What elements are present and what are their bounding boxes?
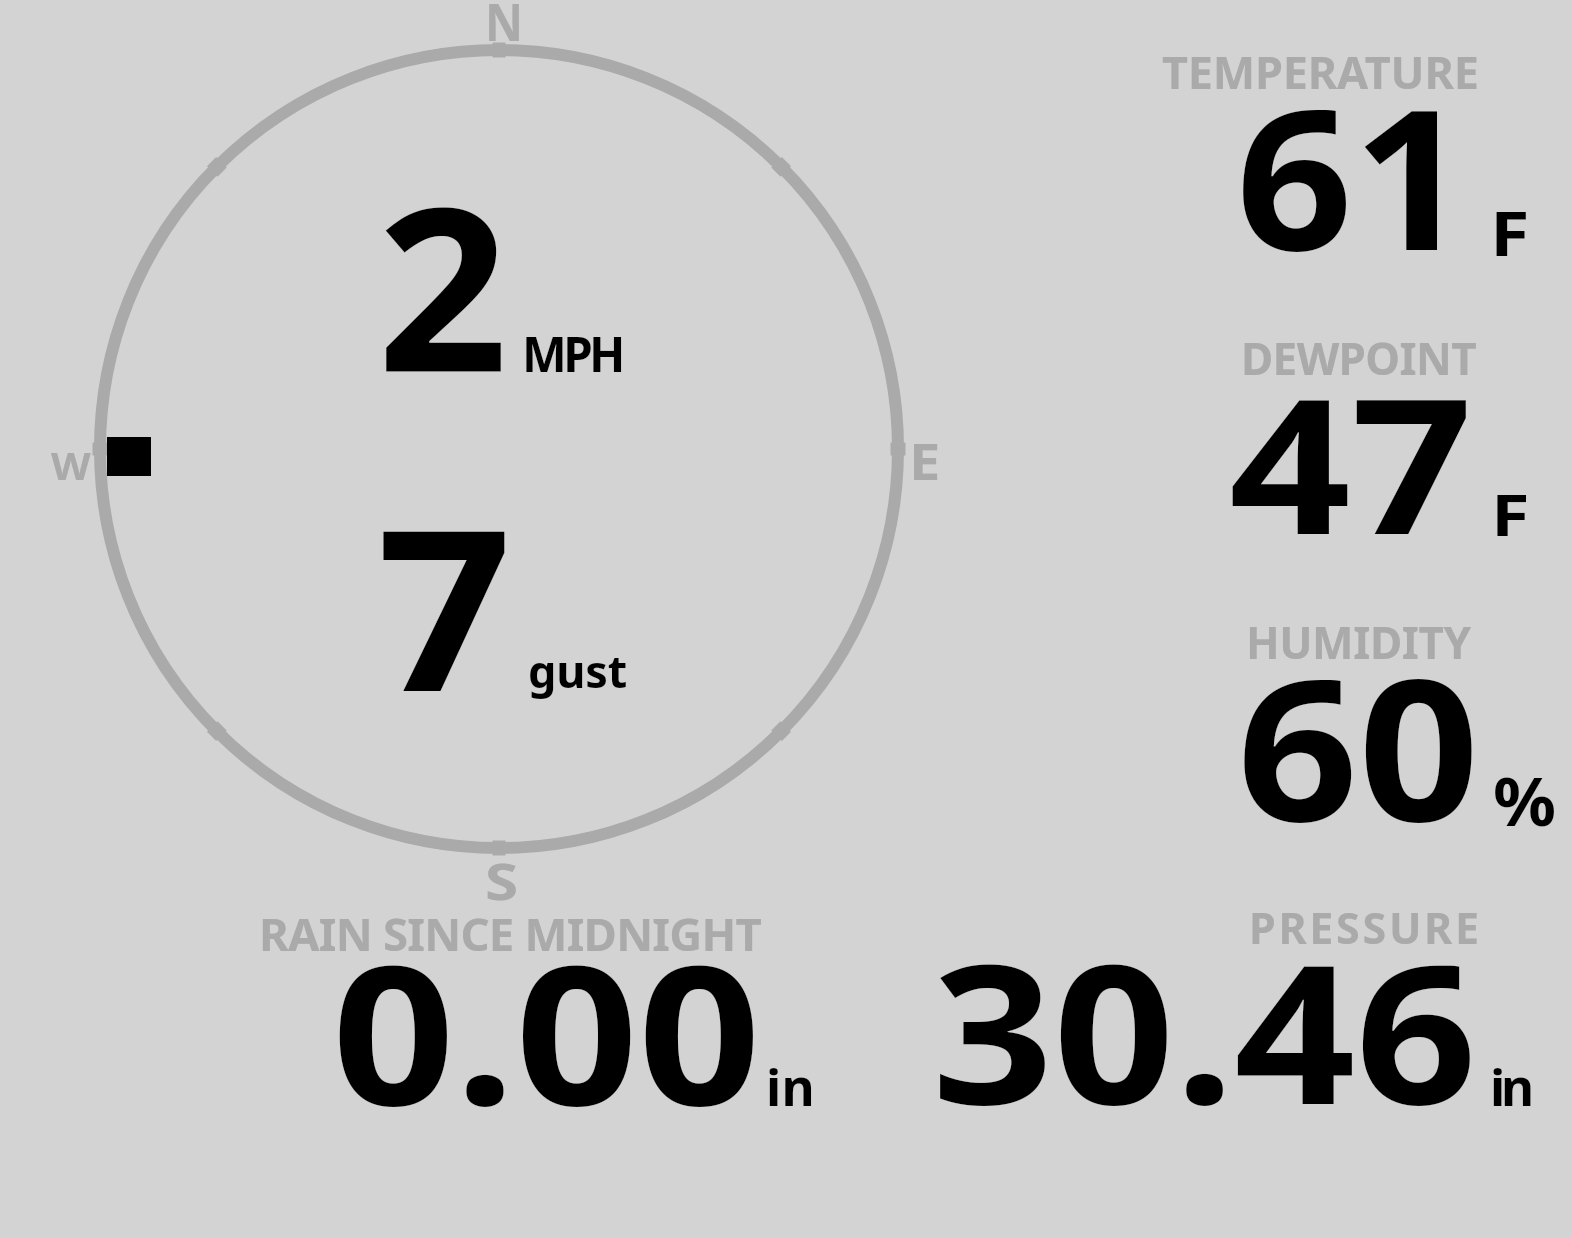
- button[interactable]: Temperature 61 degrees Fahrenheit: [1100, 40, 1571, 300]
- staticText: N: [485, 0, 524, 56]
- staticText: TEMPERATURE: [1162, 41, 1479, 102]
- staticText: RAIN SINCE MIDNIGHT: [259, 902, 761, 964]
- button[interactable]: Wind gust 7 miles per hour: [360, 470, 650, 720]
- button[interactable]: Wind speed 2 miles per hour: [360, 150, 650, 400]
- staticText: HUMIDITY: [1246, 612, 1471, 672]
- staticText: F: [1490, 191, 1530, 274]
- staticText: 30.46: [932, 898, 1477, 1161]
- button[interactable]: Wind compass, wind from the west: [100, 50, 898, 848]
- staticText: in: [766, 1051, 815, 1120]
- staticText: F: [1491, 474, 1530, 553]
- staticText: DEWPOINT: [1241, 328, 1476, 388]
- staticText: PRESSURE: [1249, 898, 1482, 957]
- staticText: MPH: [522, 321, 622, 386]
- staticText: W: [51, 439, 91, 491]
- staticText: S: [485, 845, 519, 914]
- button[interactable]: Dew point 47 degrees Fahrenheit: [1100, 320, 1571, 580]
- button[interactable]: Pressure 30.46 inches of mercury: [890, 890, 1571, 1140]
- staticText: gust: [528, 640, 628, 701]
- staticText: %: [1493, 755, 1557, 845]
- staticText: 60: [1237, 613, 1480, 879]
- staticText: 2: [377, 129, 509, 438]
- staticText: 47: [1229, 334, 1473, 589]
- staticText: 0.00: [332, 899, 762, 1162]
- staticText: E: [909, 425, 941, 494]
- staticText: 7: [377, 454, 512, 756]
- staticText: 61: [1236, 43, 1469, 307]
- staticText: in: [1490, 1051, 1530, 1120]
- button[interactable]: Humidity 60 percent: [1100, 600, 1571, 860]
- button[interactable]: Rain since midnight 0.00 inches: [240, 890, 840, 1140]
